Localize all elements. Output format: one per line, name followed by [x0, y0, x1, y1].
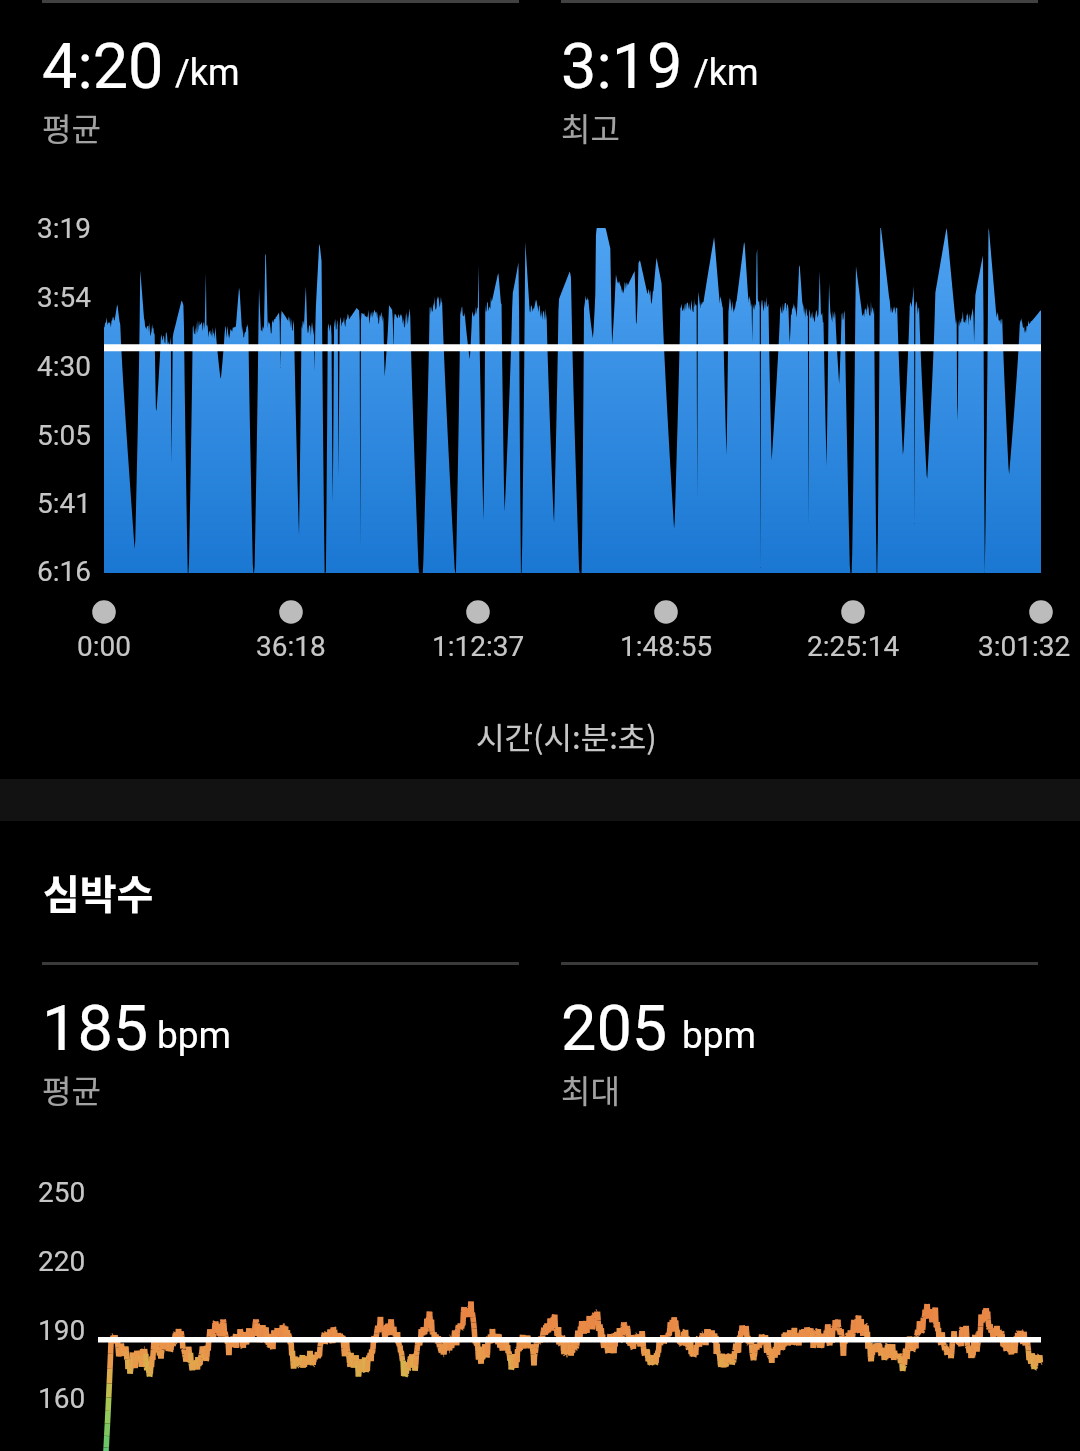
staticText: 220: [38, 1245, 86, 1278]
button[interactable]: 185: [42, 962, 519, 1107]
staticText: 3:01:32: [978, 630, 1071, 663]
staticText: 250: [38, 1176, 86, 1209]
staticText: 최고: [561, 104, 620, 150]
staticText: bpm: [157, 1014, 231, 1057]
button[interactable]: 4:20: [42, 0, 519, 145]
button[interactable]: 205: [561, 962, 1038, 1107]
staticText: 최대: [561, 1066, 620, 1112]
staticText: 4:20: [42, 30, 164, 104]
staticText: 3:19: [561, 30, 683, 104]
staticText: 3:19: [37, 212, 91, 245]
staticText: 36:18: [256, 630, 326, 663]
staticText: 4:30: [37, 350, 91, 383]
staticText: 3:54: [37, 281, 91, 314]
staticText: 6:16: [37, 555, 91, 588]
other: Heart rate chart: [0, 0, 1080, 1451]
staticText: 시간(시:분:초): [476, 713, 657, 758]
staticText: 160: [38, 1382, 86, 1415]
staticText: 심박수: [43, 863, 154, 921]
staticText: 190: [38, 1314, 86, 1347]
staticText: 평균: [42, 104, 101, 150]
staticText: 1:48:55: [620, 630, 713, 663]
staticText: /km: [175, 52, 240, 94]
staticText: 205: [561, 992, 668, 1066]
staticText: 평균: [42, 1066, 101, 1112]
staticText: 1:12:37: [432, 630, 525, 663]
staticText: 5:41: [37, 487, 91, 520]
staticText: 5:05: [37, 419, 91, 452]
staticText: 0:00: [77, 630, 131, 663]
staticText: 185: [42, 992, 149, 1066]
staticText: 2:25:14: [807, 630, 900, 663]
staticText: /km: [694, 52, 759, 94]
staticText: bpm: [682, 1014, 756, 1057]
other: Pace chart: [0, 0, 1080, 1451]
button[interactable]: 3:19: [561, 0, 1038, 145]
